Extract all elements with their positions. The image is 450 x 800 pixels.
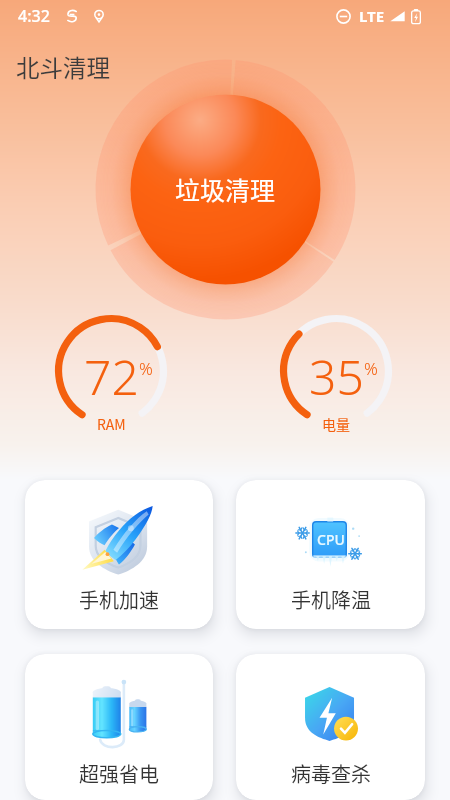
staticText: % (364, 357, 378, 380)
staticText: 北斗清理 (16, 50, 110, 84)
staticText: 电量 (322, 414, 350, 434)
button[interactable]: 病毒查杀 (236, 654, 425, 800)
staticText: LTE (359, 6, 385, 26)
staticText: CPU (317, 530, 345, 549)
staticText: 72 (84, 344, 139, 409)
staticText: 手机加速 (79, 585, 159, 614)
staticText: 垃圾清理 (175, 171, 276, 207)
button[interactable]: CPU (236, 480, 425, 629)
staticText: % (139, 357, 153, 380)
button[interactable]: 超强省电 (25, 654, 213, 800)
button[interactable]: 72 (55, 315, 167, 427)
button[interactable]: 手机加速 (25, 480, 213, 629)
staticText: 35 (309, 344, 364, 409)
button[interactable]: 35 (280, 315, 392, 427)
staticText: RAM (97, 414, 126, 434)
staticText: 4:32 (18, 5, 50, 27)
staticText: 病毒查杀 (291, 759, 371, 788)
staticText: 手机降温 (291, 585, 371, 614)
staticText: 超强省电 (79, 759, 159, 788)
